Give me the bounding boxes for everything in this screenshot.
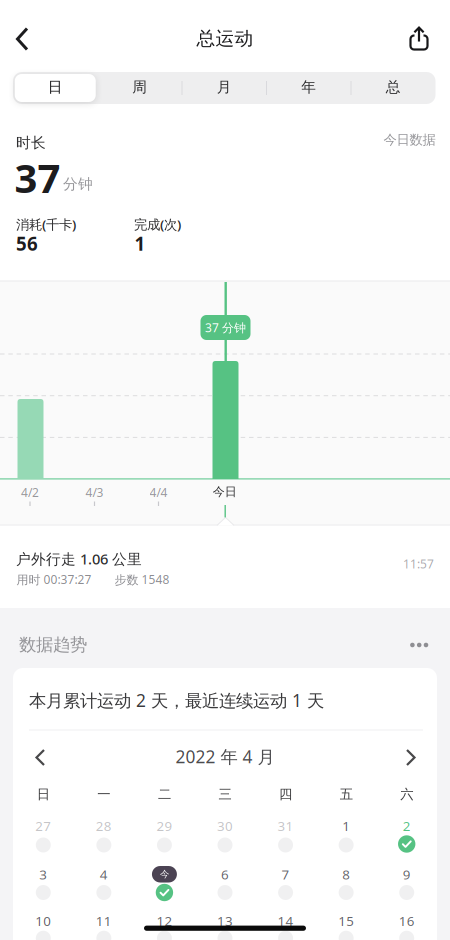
staticText: 4/3 [85, 484, 103, 500]
staticText: 日 [48, 78, 63, 96]
staticText: 日 [37, 786, 50, 802]
staticText: 11 [96, 912, 112, 930]
button[interactable]: 月 [182, 72, 266, 104]
staticText: 五 [340, 786, 353, 802]
staticText: 4/2 [21, 484, 39, 500]
button[interactable]: 户外行走 1.06 公里 [0, 527, 450, 608]
staticText: 1 [134, 231, 145, 256]
staticText: 16 [399, 912, 415, 930]
button[interactable]: 周 [97, 72, 182, 104]
staticText: 今日数据 [383, 131, 435, 148]
button[interactable]: 年 [266, 72, 351, 104]
staticText: 六 [400, 786, 413, 802]
button[interactable]: Next month [394, 743, 424, 773]
staticText: 一 [97, 786, 110, 802]
staticText: 分钟 [63, 175, 93, 193]
button[interactable]: More [402, 630, 438, 660]
staticText: 时长 [16, 134, 46, 152]
staticText: 7 [282, 865, 290, 883]
staticText: 6 [221, 865, 229, 883]
staticText: 2022 年 4 月 [175, 745, 274, 768]
staticText: 28 [96, 817, 112, 835]
staticText: 周 [132, 78, 147, 96]
staticText: 14 [278, 912, 294, 930]
staticText: 2 [403, 817, 411, 835]
staticText: 消耗(千卡) [16, 215, 76, 233]
button[interactable]: 总 [351, 72, 435, 104]
staticText: 10 [35, 912, 51, 930]
staticText: 用时 00:37:27 [16, 571, 91, 587]
staticText: 13 [217, 912, 233, 930]
staticText: 12 [156, 912, 172, 930]
staticText: 步数 1548 [114, 571, 169, 587]
staticText: 37 分钟 [205, 319, 246, 335]
staticText: 15 [338, 912, 354, 930]
button[interactable]: Previous month [26, 743, 56, 773]
staticText: 今 [160, 868, 169, 880]
button[interactable]: Back [6, 23, 40, 55]
staticText: 二 [158, 786, 171, 802]
button[interactable]: Share [402, 24, 436, 54]
staticText: 3 [39, 865, 47, 883]
staticText: 11:57 [403, 556, 434, 572]
staticText: 总 [386, 78, 401, 96]
staticText: 1 [342, 817, 350, 835]
staticText: 完成(次) [134, 215, 181, 233]
staticText: 27 [35, 817, 51, 835]
staticText: 年 [301, 78, 316, 96]
staticText: 四 [279, 786, 292, 802]
staticText: 本月累计运动 2 天，最近连续运动 1 天 [29, 689, 324, 712]
staticText: 月 [217, 78, 232, 96]
staticText: 8 [342, 865, 350, 883]
staticText: 户外行走 1.06 公里 [16, 549, 142, 568]
staticText: 三 [218, 786, 231, 802]
staticText: 29 [156, 817, 172, 835]
staticText: 4 [100, 865, 108, 883]
staticText: 数据趋势 [19, 634, 87, 655]
staticText: 37 [14, 151, 60, 204]
staticText: 4/4 [149, 484, 167, 500]
button[interactable]: 日 [13, 72, 97, 104]
staticText: 总运动 [196, 27, 253, 50]
staticText: 30 [217, 817, 233, 835]
staticText: 9 [403, 865, 411, 883]
staticText: 31 [278, 817, 294, 835]
staticText: 56 [16, 231, 38, 256]
staticText: 今日 [213, 484, 237, 499]
